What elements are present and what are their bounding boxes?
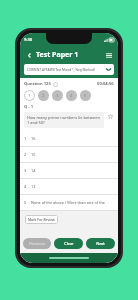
- staticText: 13: [31, 184, 36, 189]
- button[interactable]: 5: [20, 195, 118, 210]
- staticText: Clear: [64, 241, 74, 246]
- staticText: Next: [96, 241, 105, 246]
- button[interactable]: Bookmark: [106, 112, 114, 120]
- staticText: 3: [56, 93, 59, 98]
- staticText: Question 125: [24, 81, 51, 87]
- staticText: 14: [31, 168, 36, 173]
- button[interactable]: Previous: [23, 238, 51, 249]
- staticText: Q - 1: [24, 104, 34, 110]
- button[interactable]: Menu: [104, 50, 114, 60]
- staticText: 15: [31, 152, 36, 157]
- button[interactable]: 3: [20, 163, 118, 178]
- staticText: 1: [28, 93, 31, 98]
- staticText: How many prime numbers lie between 1 and…: [27, 115, 101, 125]
- button[interactable]: Info: [53, 82, 58, 87]
- staticText: 16: [31, 136, 36, 141]
- button[interactable]: 5: [80, 90, 91, 101]
- button[interactable]: Clear: [54, 238, 83, 249]
- staticText: 5: [24, 200, 27, 205]
- button[interactable]: Mark For Review: [25, 215, 58, 224]
- staticText: 1: [24, 136, 27, 141]
- staticText: 2: [24, 152, 27, 157]
- staticText: None of the above / More than one of the…: [31, 200, 114, 205]
- staticText: Test Paper 1: [36, 50, 79, 60]
- button[interactable]: 4: [66, 90, 77, 101]
- button[interactable]: 2: [20, 147, 118, 162]
- staticText: 3: [24, 168, 27, 173]
- button[interactable]: CURRENT AFFAIRS(Test Mixed 1, Neg Marked…: [24, 64, 114, 75]
- button[interactable]: 3: [52, 90, 63, 101]
- staticText: Previous: [29, 241, 45, 246]
- button[interactable]: 1: [24, 90, 35, 101]
- staticText: 4: [24, 184, 27, 189]
- staticText: 5: [84, 93, 87, 98]
- button[interactable]: 2: [38, 90, 49, 101]
- button[interactable]: 4: [20, 179, 118, 194]
- button[interactable]: Next: [86, 238, 115, 249]
- button[interactable]: Back: [24, 50, 34, 60]
- staticText: 2: [42, 93, 45, 98]
- staticText: Mark For Review: [28, 217, 55, 222]
- staticText: 9:30: [24, 37, 32, 42]
- staticText: 00:04:56: [97, 81, 114, 87]
- button[interactable]: 1: [20, 131, 118, 146]
- staticText: CURRENT AFFAIRS(Test Mixed 1, Neg Marked…: [27, 68, 106, 72]
- staticText: 4: [70, 93, 73, 98]
